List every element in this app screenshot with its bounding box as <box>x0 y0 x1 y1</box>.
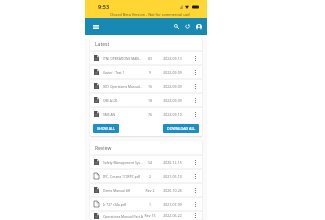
staticText: 16 <box>143 84 157 89</box>
staticText: 2022-09-09 <box>157 84 188 89</box>
button[interactable]: More options <box>188 107 202 121</box>
staticText: Safety Management System <box>103 160 143 164</box>
staticText: Latest <box>95 41 110 48</box>
staticText: 2021-05-10 <box>157 174 188 179</box>
staticText: Rev 2 <box>143 188 157 193</box>
staticText: 76 <box>143 112 157 117</box>
button[interactable]: (KC) Operations Manual Par... <box>90 79 202 93</box>
button[interactable]: (TN) OPERATIONS MANUAL... <box>90 51 202 65</box>
staticText: 2022-06-22 <box>157 213 188 218</box>
staticText: Review <box>95 145 112 152</box>
button[interactable]: SHOW ALL <box>93 124 119 133</box>
staticText: 2021-07-09 <box>157 202 188 207</box>
button[interactable]: Account <box>193 21 204 32</box>
staticText: Rev 15 <box>143 213 157 218</box>
staticText: (TN) OPERATIONS MANUAL... <box>103 56 143 60</box>
button[interactable]: More options <box>188 51 202 65</box>
staticText: 1 <box>143 202 157 207</box>
staticText: (KC) Operations Manual Par... <box>103 84 143 88</box>
button[interactable]: OM-A LXI <box>90 93 202 107</box>
staticText: 83 <box>143 56 157 61</box>
staticText: 9 <box>143 70 157 75</box>
button[interactable]: DOWNLOAD ALL <box>163 124 199 133</box>
staticText: IPC- Cessna 172RPC.pdf <box>103 174 143 178</box>
button[interactable]: Safety Management System <box>90 155 202 169</box>
button[interactable]: Xavier - Test 1 <box>90 65 202 79</box>
staticText: 2022-09-09 <box>157 98 188 103</box>
staticText: Operations Manual Part A <box>103 214 143 218</box>
button[interactable]: More options <box>188 65 202 79</box>
button[interactable]: Search <box>171 21 182 32</box>
button[interactable]: More options <box>188 169 202 183</box>
staticText: 2020-12-15 <box>157 160 188 165</box>
staticText: SHOW ALL <box>97 126 115 131</box>
staticText: DOWNLOAD ALL <box>167 126 196 131</box>
staticText: Xavier - Test 1 <box>103 70 143 74</box>
staticText: Closed Beta Version - Not for commercial… <box>110 12 191 17</box>
button[interactable]: Operations Manual Part A <box>90 211 202 220</box>
button[interactable]: Menu <box>90 21 101 32</box>
staticText: 9:53 <box>98 3 110 11</box>
staticText: Ir 727 r34a.pdf <box>103 202 143 206</box>
staticText: SMS AN <box>103 112 143 116</box>
staticText: 2022-09-10 <box>157 112 188 117</box>
staticText: 2 <box>143 174 157 179</box>
button[interactable]: SMS AN <box>90 107 202 121</box>
button[interactable]: More options <box>188 211 202 220</box>
button[interactable]: More options <box>188 155 202 169</box>
button[interactable]: More options <box>188 79 202 93</box>
staticText: 2022-09-13 <box>157 56 188 61</box>
staticText: 54 <box>143 160 157 165</box>
button[interactable]: Refresh <box>182 21 193 32</box>
button[interactable]: More options <box>188 93 202 107</box>
staticText: 2020-10-26 <box>157 188 188 193</box>
button[interactable]: Demo Manual #H <box>90 183 202 197</box>
staticText: 2022-09-09 <box>157 70 188 75</box>
button[interactable]: Ir 727 r34a.pdf <box>90 197 202 211</box>
button[interactable]: More options <box>188 197 202 211</box>
button[interactable]: More options <box>188 183 202 197</box>
staticText: 18 <box>143 98 157 103</box>
button[interactable]: IPC- Cessna 172RPC.pdf <box>90 169 202 183</box>
staticText: Demo Manual #H <box>103 188 143 192</box>
staticText: OM-A LXI <box>103 98 143 102</box>
